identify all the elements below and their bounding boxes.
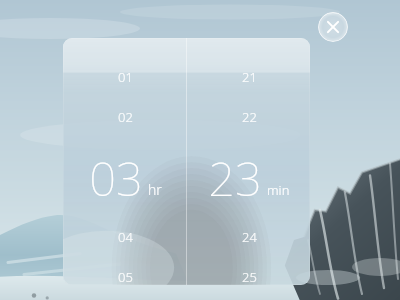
staticText: 21 [242,68,257,86]
button[interactable]: 25 [218,264,280,285]
button[interactable]: 23 [190,146,308,208]
staticText: 05 [118,268,133,285]
staticText: 24 [242,228,257,246]
button[interactable]: 01 [94,64,156,90]
staticText: 22 [242,108,257,126]
staticText: 01 [118,68,133,86]
staticText: 03 [89,146,143,208]
button[interactable]: 03 [66,146,184,208]
button[interactable]: Close [318,12,348,42]
staticText: 02 [118,108,133,126]
button[interactable]: 04 [94,224,156,250]
button[interactable]: 02 [94,104,156,130]
staticText: min [267,181,290,199]
button[interactable]: 05 [94,264,156,285]
staticText: 04 [118,228,133,246]
staticText: hr [148,180,162,199]
staticText: 25 [242,268,257,285]
staticText: 23 [208,146,262,208]
button[interactable]: 24 [218,224,280,250]
button[interactable]: 21 [218,64,280,90]
button[interactable]: 22 [218,104,280,130]
